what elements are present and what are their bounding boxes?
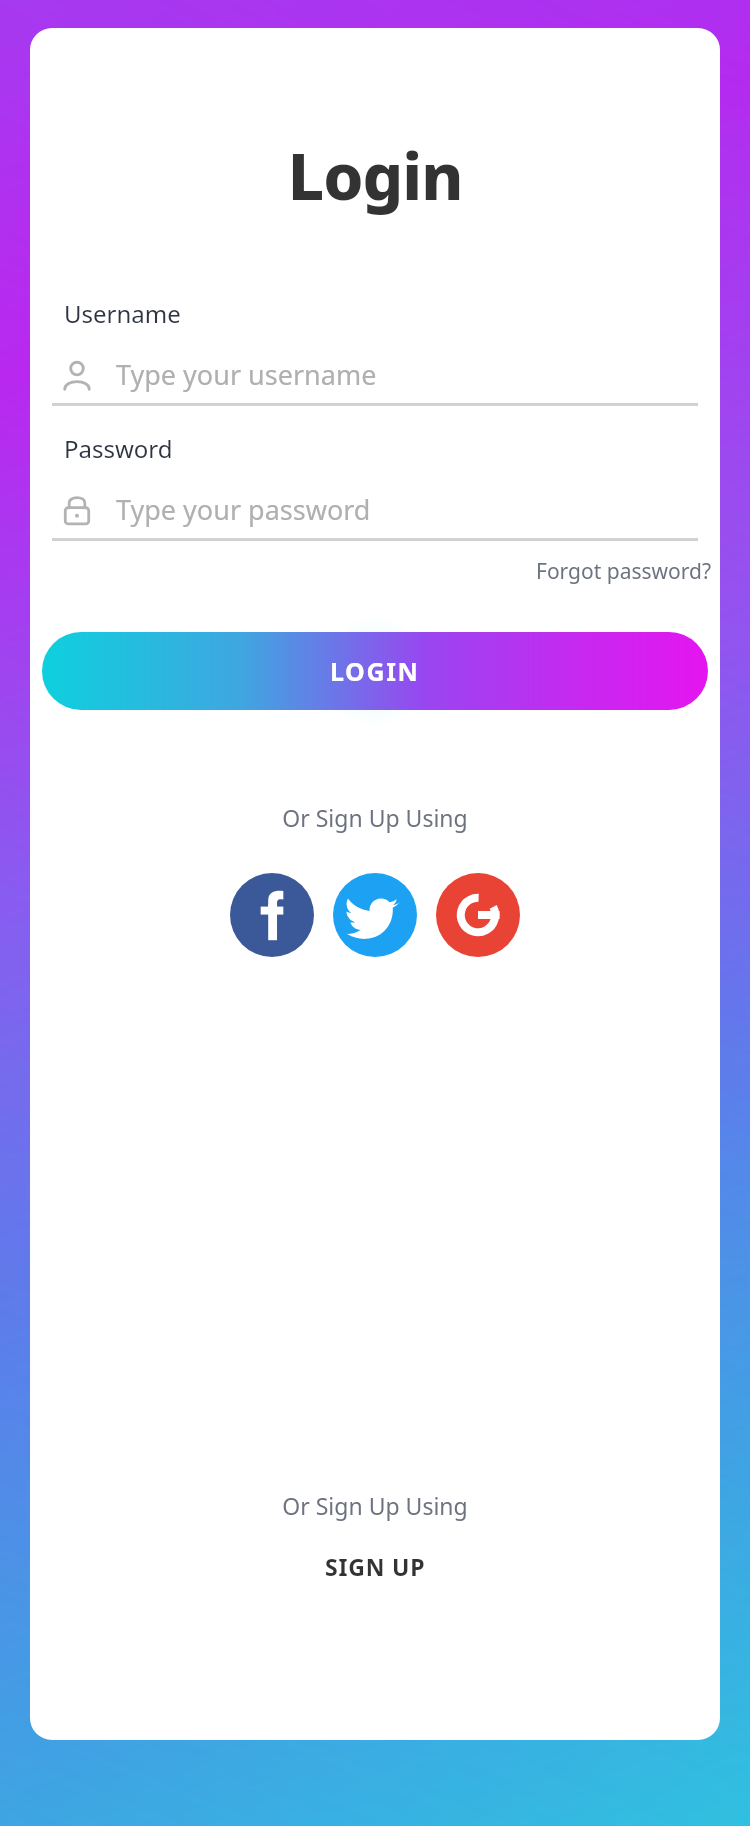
staticText: Type your username: [116, 356, 377, 393]
button[interactable]: Type your username: [52, 356, 698, 403]
button[interactable]: Sign up with Google: [436, 873, 520, 957]
staticText: Login: [30, 132, 720, 219]
staticText: Or Sign Up Using: [30, 802, 720, 833]
staticText: Type your password: [116, 491, 371, 528]
button[interactable]: Sign up with Facebook: [230, 873, 314, 957]
staticText: Password: [64, 432, 173, 465]
staticText: Or Sign Up Using: [30, 1490, 720, 1521]
button[interactable]: Sign up with Twitter: [333, 873, 417, 957]
button[interactable]: SIGN UP: [309, 1543, 442, 1590]
staticText: Username: [64, 297, 181, 330]
button[interactable]: LOGIN: [42, 632, 708, 710]
staticText: Forgot password?: [536, 557, 712, 586]
button[interactable]: Forgot password?: [532, 553, 716, 590]
staticText: SIGN UP: [325, 1551, 426, 1582]
staticText: LOGIN: [330, 654, 420, 688]
button[interactable]: Type your password: [52, 491, 698, 538]
